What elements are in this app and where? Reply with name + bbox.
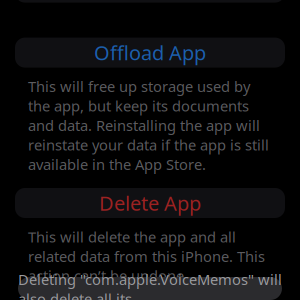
staticText: Delete App (99, 190, 201, 216)
staticText: This will delete the app and all related… (28, 227, 265, 285)
staticText: This will free up storage used by the ap… (28, 77, 269, 174)
staticText: Deleting "com.apple.VoiceMemos" will als… (18, 269, 282, 300)
button[interactable]: Delete App (15, 188, 285, 218)
staticText: Offload App (94, 39, 206, 66)
button[interactable]: Offload App (15, 38, 285, 68)
button[interactable]: Documents & Data (15, 0, 285, 3)
